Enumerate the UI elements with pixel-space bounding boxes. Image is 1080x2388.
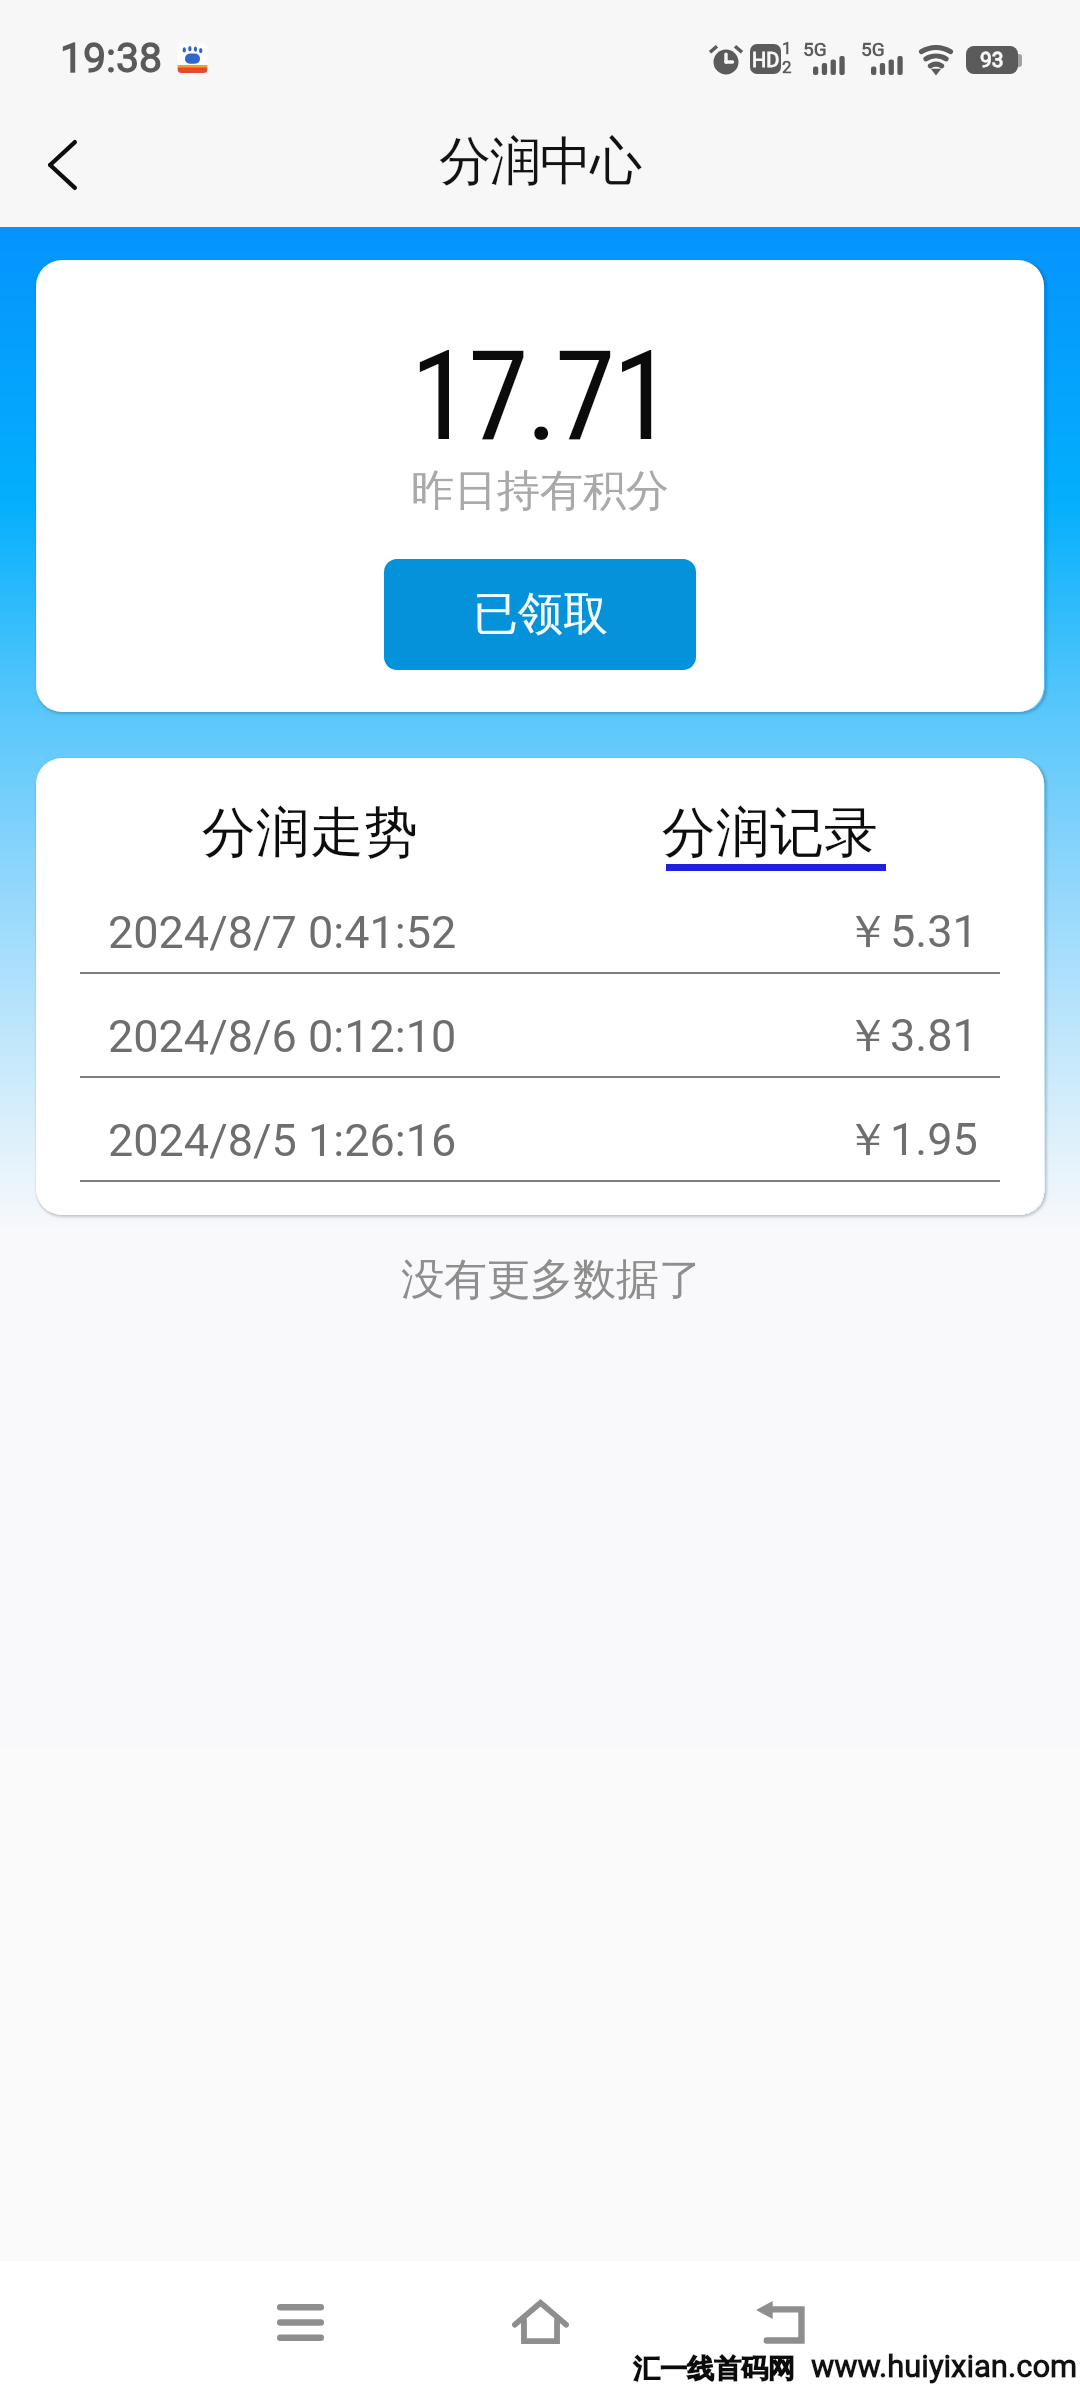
staticText: HD <box>752 48 780 71</box>
button[interactable]: Home <box>480 2262 600 2382</box>
staticText: 2 <box>782 57 792 77</box>
staticText: 2024/8/5 1:26:16 <box>108 1114 457 1167</box>
staticText: www.huiyixian.com <box>811 2348 1078 2384</box>
button[interactable]: 2024/8/7 0:41:52 <box>36 870 1044 972</box>
button[interactable]: 分润走势 <box>80 799 540 914</box>
button[interactable]: Back <box>720 2262 840 2382</box>
button[interactable]: Back <box>0 105 124 225</box>
staticText: 汇一线首码网 <box>633 2352 795 2386</box>
staticText: 5G <box>803 38 827 60</box>
staticText: 1 <box>782 38 792 58</box>
staticText: 昨日持有积分 <box>411 464 669 518</box>
button[interactable]: 2024/8/6 0:12:10 <box>36 974 1044 1076</box>
button[interactable]: 2024/8/5 1:26:16 <box>36 1078 1044 1180</box>
staticText: ￥1.95 <box>845 1112 978 1169</box>
staticText: 93 <box>980 48 1004 73</box>
staticText: 分润中心 <box>439 129 641 195</box>
staticText: 分润走势 <box>202 799 418 867</box>
staticText: 分润记录 <box>662 799 878 867</box>
staticText: 没有更多数据了 <box>401 1253 702 1307</box>
button[interactable]: 分润记录 <box>540 799 1000 914</box>
staticText: 2024/8/7 0:41:52 <box>108 906 457 959</box>
button[interactable]: 已领取 <box>384 559 696 670</box>
staticText: 2024/8/6 0:12:10 <box>108 1010 457 1063</box>
button[interactable]: Menu <box>240 2262 360 2382</box>
staticText: ￥3.81 <box>845 1008 978 1065</box>
staticText: 5G <box>861 38 885 60</box>
staticText: 17.71 <box>410 324 671 469</box>
staticText: 已领取 <box>473 586 608 643</box>
staticText: ￥5.31 <box>845 904 978 961</box>
staticText: 19:38 <box>60 34 163 82</box>
